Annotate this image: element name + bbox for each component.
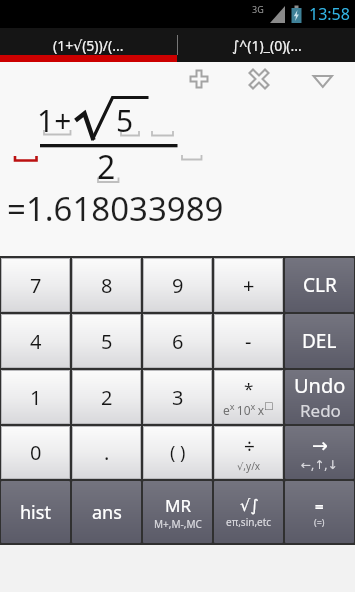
staticText: (1+√(5))/(... — [53, 36, 124, 55]
staticText: 3 — [172, 384, 184, 411]
button[interactable]: 0 — [1, 426, 70, 479]
staticText: * — [244, 377, 254, 400]
button[interactable]: 6 — [143, 314, 212, 368]
button[interactable]: → — [285, 426, 354, 479]
button[interactable]: 1 — [1, 370, 70, 424]
button[interactable]: 9 — [143, 258, 212, 312]
staticText: hist — [20, 500, 51, 525]
staticText: =1.618033989 — [7, 186, 224, 231]
staticText: . — [104, 439, 110, 466]
staticText: Undo — [294, 372, 346, 399]
button[interactable] — [309, 66, 337, 94]
staticText: 7 — [30, 272, 42, 299]
button[interactable]: = — [285, 481, 354, 543]
staticText: √∫ — [240, 496, 259, 515]
staticText: → — [312, 434, 328, 456]
staticText: 2 — [97, 145, 116, 189]
button[interactable]: (1+√(5))/(... — [0, 28, 177, 62]
button[interactable]: 7 — [1, 258, 70, 312]
staticText: 0 — [30, 439, 42, 466]
button[interactable]: hist — [1, 481, 70, 543]
staticText: + — [243, 272, 255, 299]
staticText: 2 — [101, 384, 113, 411]
button[interactable]: 4 — [1, 314, 70, 368]
staticText: √,y/x — [237, 459, 261, 473]
staticText: (=) — [314, 516, 325, 528]
staticText: - — [245, 328, 252, 355]
staticText: M+,M-,MC — [154, 517, 202, 531]
staticText: 1 — [30, 384, 42, 411]
button[interactable]: ∫^(1)_(0)(... — [178, 28, 355, 62]
staticText: ans — [92, 500, 122, 525]
staticText: CLR — [303, 272, 337, 298]
button[interactable]: ( ) — [143, 426, 212, 479]
button[interactable]: DEL — [285, 314, 354, 368]
button[interactable]: 2 — [72, 370, 141, 424]
staticText: 5 — [101, 328, 113, 355]
button[interactable]: √∫ — [214, 481, 283, 543]
staticText: Redo — [300, 399, 341, 422]
button[interactable]: MR — [143, 481, 212, 543]
staticText: 5 — [116, 100, 134, 141]
button[interactable]: ans — [72, 481, 141, 543]
button[interactable] — [245, 65, 273, 93]
staticText: ÷ — [244, 433, 255, 459]
staticText: MR — [165, 494, 191, 517]
button[interactable]: ÷ — [214, 426, 283, 479]
staticText: = — [315, 496, 324, 516]
staticText: ←,↑,↓ — [301, 456, 338, 472]
staticText: 4 — [30, 328, 42, 355]
staticText: DEL — [302, 328, 337, 354]
staticText: 3G — [252, 3, 264, 15]
staticText: 8 — [101, 272, 113, 299]
staticText: 6 — [172, 328, 184, 355]
staticText: ( ) — [170, 440, 186, 465]
button[interactable]: CLR — [285, 258, 354, 312]
staticText: 13:58 — [309, 3, 350, 25]
button[interactable] — [185, 65, 213, 93]
staticText: ∫^(1)_(0)(... — [232, 36, 302, 55]
staticText: 1+ — [37, 100, 72, 141]
button[interactable]: 5 — [72, 314, 141, 368]
button[interactable]: 8 — [72, 258, 141, 312]
button[interactable]: . — [72, 426, 141, 479]
staticText: eπ,sin,etc — [226, 515, 272, 529]
staticText: ex 10x x□ — [223, 400, 274, 418]
button[interactable]: 3 — [143, 370, 212, 424]
staticText: 9 — [172, 272, 184, 299]
button[interactable]: * — [214, 370, 283, 424]
button[interactable]: + — [214, 258, 283, 312]
button[interactable]: Undo — [285, 370, 354, 424]
button[interactable]: - — [214, 314, 283, 368]
